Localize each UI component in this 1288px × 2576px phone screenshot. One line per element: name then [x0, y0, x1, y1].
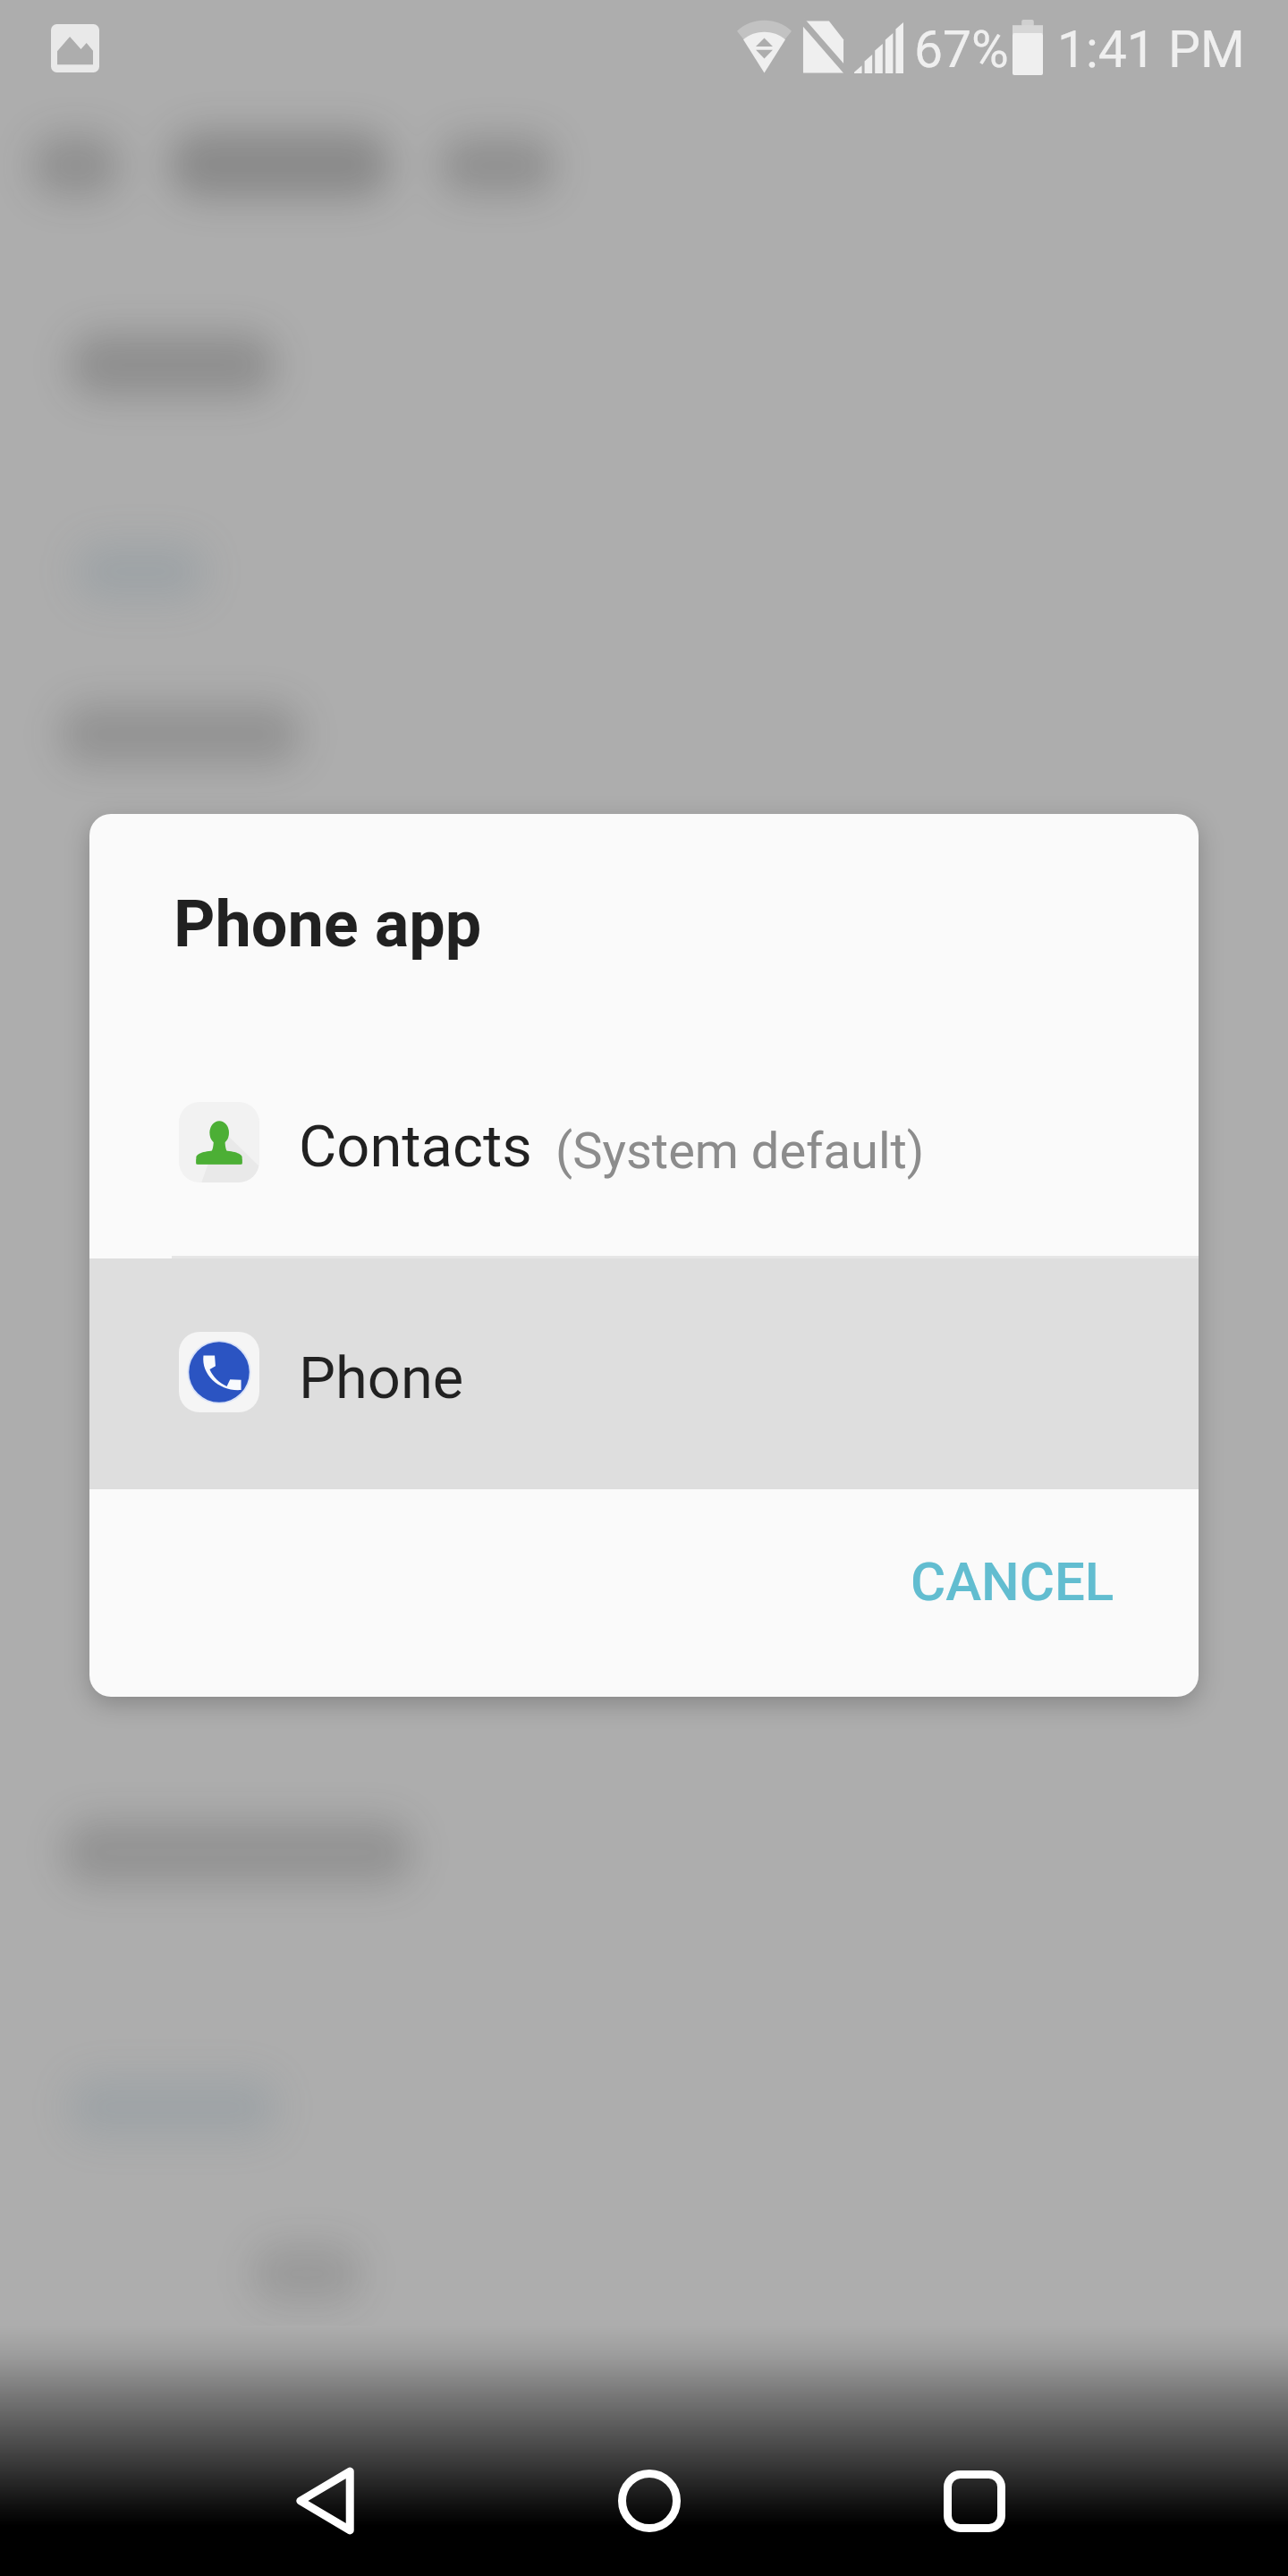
button[interactable]: Contacts — [89, 973, 1199, 1256]
button[interactable]: CANCEL — [877, 1525, 1148, 1638]
staticText: Contacts — [299, 1113, 532, 1181]
button[interactable]: Home — [587, 2438, 712, 2563]
staticText: 67% — [914, 20, 1009, 80]
staticText: CANCEL — [911, 1550, 1114, 1613]
button[interactable]: Back — [262, 2438, 387, 2563]
staticText: (System default) — [555, 1122, 925, 1181]
staticText: Phone — [299, 1344, 464, 1412]
staticText: 1:41 PM — [1057, 20, 1245, 80]
staticText: Phone app — [174, 886, 482, 962]
button[interactable]: Recents — [911, 2438, 1037, 2563]
button[interactable]: Phone — [89, 1258, 1199, 1489]
